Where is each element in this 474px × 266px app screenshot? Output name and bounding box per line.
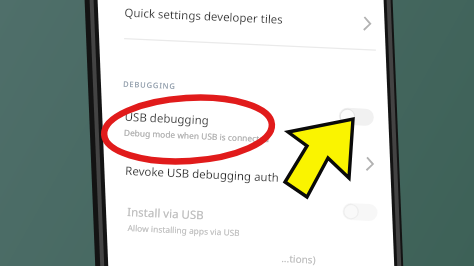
- button[interactable]: Revoke USB debugging authorizations: [108, 150, 388, 196]
- button[interactable]: USB debugging: [104, 92, 384, 150]
- button[interactable]: Quick settings developer tiles: [96, 0, 376, 44]
- button[interactable]: Install via USB: [112, 196, 392, 244]
